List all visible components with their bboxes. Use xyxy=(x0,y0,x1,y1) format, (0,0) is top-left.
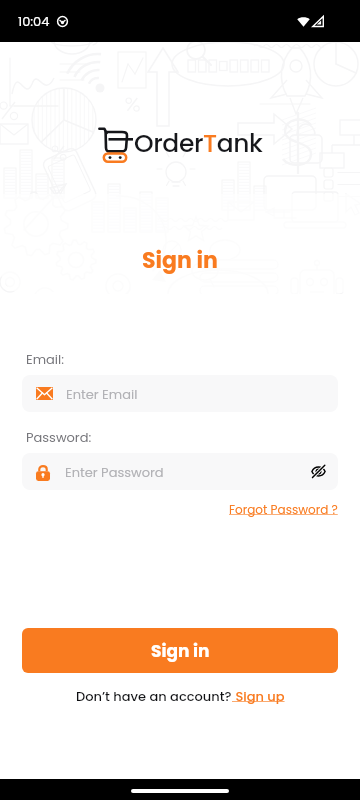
button[interactable]: Show password xyxy=(311,465,326,478)
button[interactable]: Sign up xyxy=(232,687,285,705)
button[interactable]: Forgot Password ? xyxy=(229,501,338,518)
button[interactable]: Enter Password xyxy=(22,453,338,490)
staticText: Sign in xyxy=(142,245,218,276)
staticText: Password: xyxy=(26,428,92,446)
staticText: Enter Email xyxy=(66,385,138,403)
staticText: Email: xyxy=(26,350,65,368)
staticText: Sign in xyxy=(151,639,210,663)
staticText: OrderTank xyxy=(134,126,263,161)
button[interactable]: Sign in xyxy=(22,628,338,673)
button[interactable]: Enter Email xyxy=(22,375,338,412)
staticText: Don’t have an account? xyxy=(76,687,232,705)
staticText: Enter Password xyxy=(65,463,164,481)
staticText: 10:04 xyxy=(18,12,50,30)
